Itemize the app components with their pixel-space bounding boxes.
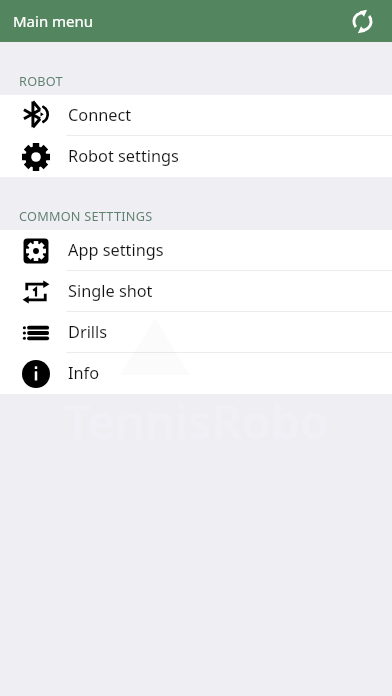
staticText: Single shot bbox=[68, 280, 153, 302]
staticText: ROBOT bbox=[19, 72, 63, 89]
staticText: Robot settings bbox=[68, 145, 179, 167]
staticText: Info bbox=[68, 362, 100, 384]
staticText: App settings bbox=[68, 239, 164, 261]
staticText: Main menu bbox=[13, 11, 94, 31]
button[interactable]: Info bbox=[0, 353, 392, 394]
button[interactable]: Single shot bbox=[0, 271, 392, 312]
button[interactable]: App settings bbox=[0, 230, 392, 271]
staticText: TennisRobo bbox=[64, 389, 330, 453]
staticText: Drills bbox=[68, 321, 108, 343]
button[interactable]: Connect bbox=[0, 95, 392, 136]
button[interactable]: Refresh bbox=[346, 5, 378, 37]
staticText: COMMON SETTTINGS bbox=[19, 207, 153, 224]
button[interactable]: Robot settings bbox=[0, 136, 392, 177]
button[interactable]: Drills bbox=[0, 312, 392, 353]
staticText: Connect bbox=[68, 104, 132, 126]
